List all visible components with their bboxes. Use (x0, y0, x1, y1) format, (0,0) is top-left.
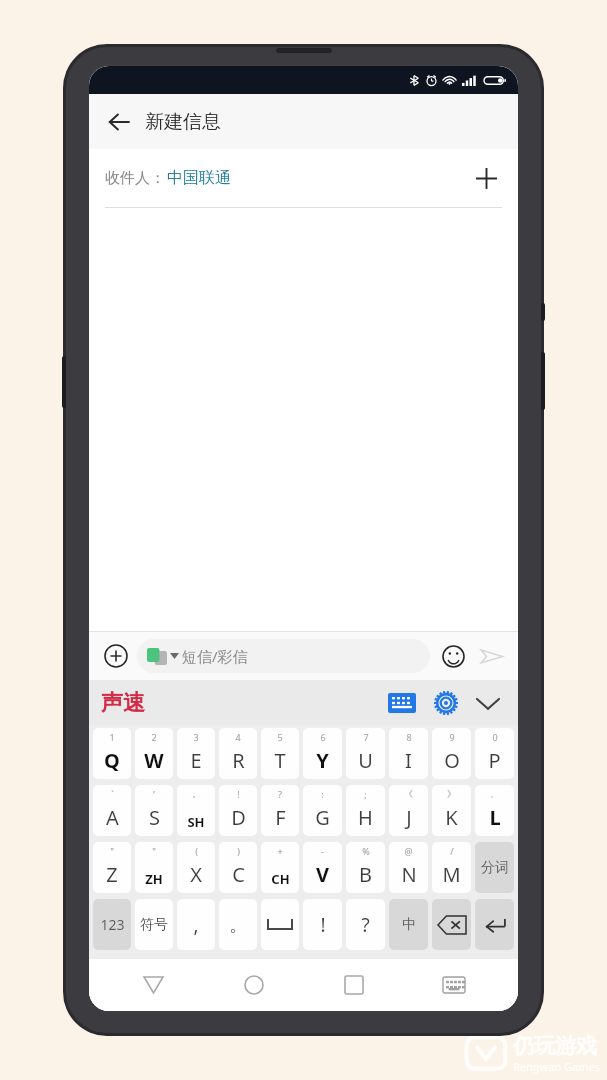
staticText: Q (104, 747, 120, 774)
button[interactable]: + (261, 842, 299, 893)
button[interactable]: 2 (135, 728, 173, 779)
staticText: CH (271, 870, 290, 888)
button[interactable]: ) (219, 842, 257, 893)
button[interactable]: del (432, 899, 471, 950)
button[interactable]: 中国联通 (167, 168, 231, 188)
button[interactable]: 8 (389, 728, 428, 779)
button[interactable]: 符号 (135, 899, 173, 950)
button[interactable]: ! (219, 785, 257, 836)
staticText: / (450, 845, 454, 857)
staticText: 《 (404, 788, 413, 799)
button[interactable]: Keyboard layout (384, 685, 420, 721)
staticText: 、 (490, 788, 499, 799)
button[interactable]: 短信/彩信 (137, 639, 430, 673)
staticText: Y (316, 747, 329, 774)
staticText: 收件人： (105, 169, 165, 188)
button[interactable]: 123 (93, 899, 131, 950)
staticText: ’ (153, 788, 155, 800)
button[interactable]: Switch keyboard (404, 959, 504, 1011)
staticText: % (362, 845, 370, 857)
button[interactable]: space (261, 899, 299, 950)
staticText: K (445, 804, 458, 831)
button[interactable]: 《 (389, 785, 428, 836)
button[interactable]: Send (472, 637, 510, 675)
staticText: M (442, 861, 461, 888)
button[interactable]: 4 (219, 728, 257, 779)
button[interactable]: Back (103, 959, 204, 1011)
staticText: 。 (229, 913, 248, 937)
button[interactable]: Emoji (434, 637, 472, 675)
button[interactable]: " (135, 842, 173, 893)
staticText: + (277, 845, 283, 857)
staticText: 9 (449, 731, 455, 743)
button[interactable]: @ (389, 842, 428, 893)
button[interactable]: enter (475, 899, 514, 950)
staticText: 6 (320, 731, 326, 743)
staticText: B (359, 861, 372, 888)
button[interactable]: 0 (475, 728, 514, 779)
button[interactable]: 分词 (475, 842, 514, 893)
button[interactable]: ! (303, 899, 342, 950)
button[interactable]: ’ (135, 785, 173, 836)
button[interactable]: Home (204, 959, 304, 1011)
staticText: 8 (406, 731, 412, 743)
button[interactable]: ? (261, 785, 299, 836)
staticText: 仍玩游戏 (513, 1033, 597, 1059)
staticText: F (275, 804, 286, 831)
staticText: 。 (192, 788, 201, 799)
button[interactable]: Hide keyboard (470, 685, 506, 721)
button[interactable]: ? (346, 899, 385, 950)
staticText: Rengwan Games (513, 1059, 601, 1074)
staticText: 2 (151, 731, 157, 743)
button[interactable]: 7 (346, 728, 385, 779)
button[interactable]: 、 (475, 785, 514, 836)
staticText: 4 (235, 731, 241, 743)
staticText: : (321, 788, 324, 800)
staticText: P (488, 747, 501, 774)
button[interactable]: Settings (428, 685, 464, 721)
button[interactable]: Attach (97, 637, 135, 675)
staticText: C (232, 861, 245, 888)
button[interactable]: 5 (261, 728, 299, 779)
button[interactable]: 中 (389, 899, 428, 950)
button[interactable]: 1 (93, 728, 131, 779)
button[interactable]: 9 (432, 728, 471, 779)
staticText: Z (106, 861, 118, 888)
staticText: 中 (402, 916, 416, 934)
button[interactable]: 》 (432, 785, 471, 836)
staticText: 1 (109, 731, 115, 743)
button[interactable]: , (177, 899, 215, 950)
staticText: 短信/彩信 (182, 646, 248, 666)
button[interactable]: 6 (303, 728, 342, 779)
button[interactable]: / (432, 842, 471, 893)
staticText: ! (237, 788, 240, 800)
staticText: " (152, 845, 156, 857)
button[interactable]: 。 (177, 785, 215, 836)
button[interactable]: ( (177, 842, 215, 893)
staticText: 0 (492, 731, 498, 743)
staticText: 中国联通 (167, 168, 231, 188)
button[interactable]: Back (97, 100, 141, 144)
staticText: 新建信息 (145, 110, 221, 134)
button[interactable]: 3 (177, 728, 215, 779)
staticText: W (144, 747, 164, 774)
staticText: S (149, 804, 160, 831)
button[interactable]: - (303, 842, 342, 893)
button[interactable]: " (93, 842, 131, 893)
staticText: 5 (277, 731, 283, 743)
button[interactable]: ` (93, 785, 131, 836)
button[interactable]: ; (346, 785, 385, 836)
button[interactable]: Add recipient (466, 158, 506, 198)
staticText: L (489, 804, 501, 831)
button[interactable]: Recents (304, 959, 404, 1011)
button[interactable]: : (303, 785, 342, 836)
staticText: 123 (100, 915, 125, 934)
staticText: O (444, 747, 460, 774)
button[interactable]: % (346, 842, 385, 893)
staticText: ? (361, 912, 370, 938)
staticText: ; (364, 788, 367, 800)
staticText: U (358, 747, 373, 774)
staticText: 声速 (101, 689, 145, 717)
staticText: V (316, 861, 329, 888)
button[interactable]: 。 (219, 899, 257, 950)
